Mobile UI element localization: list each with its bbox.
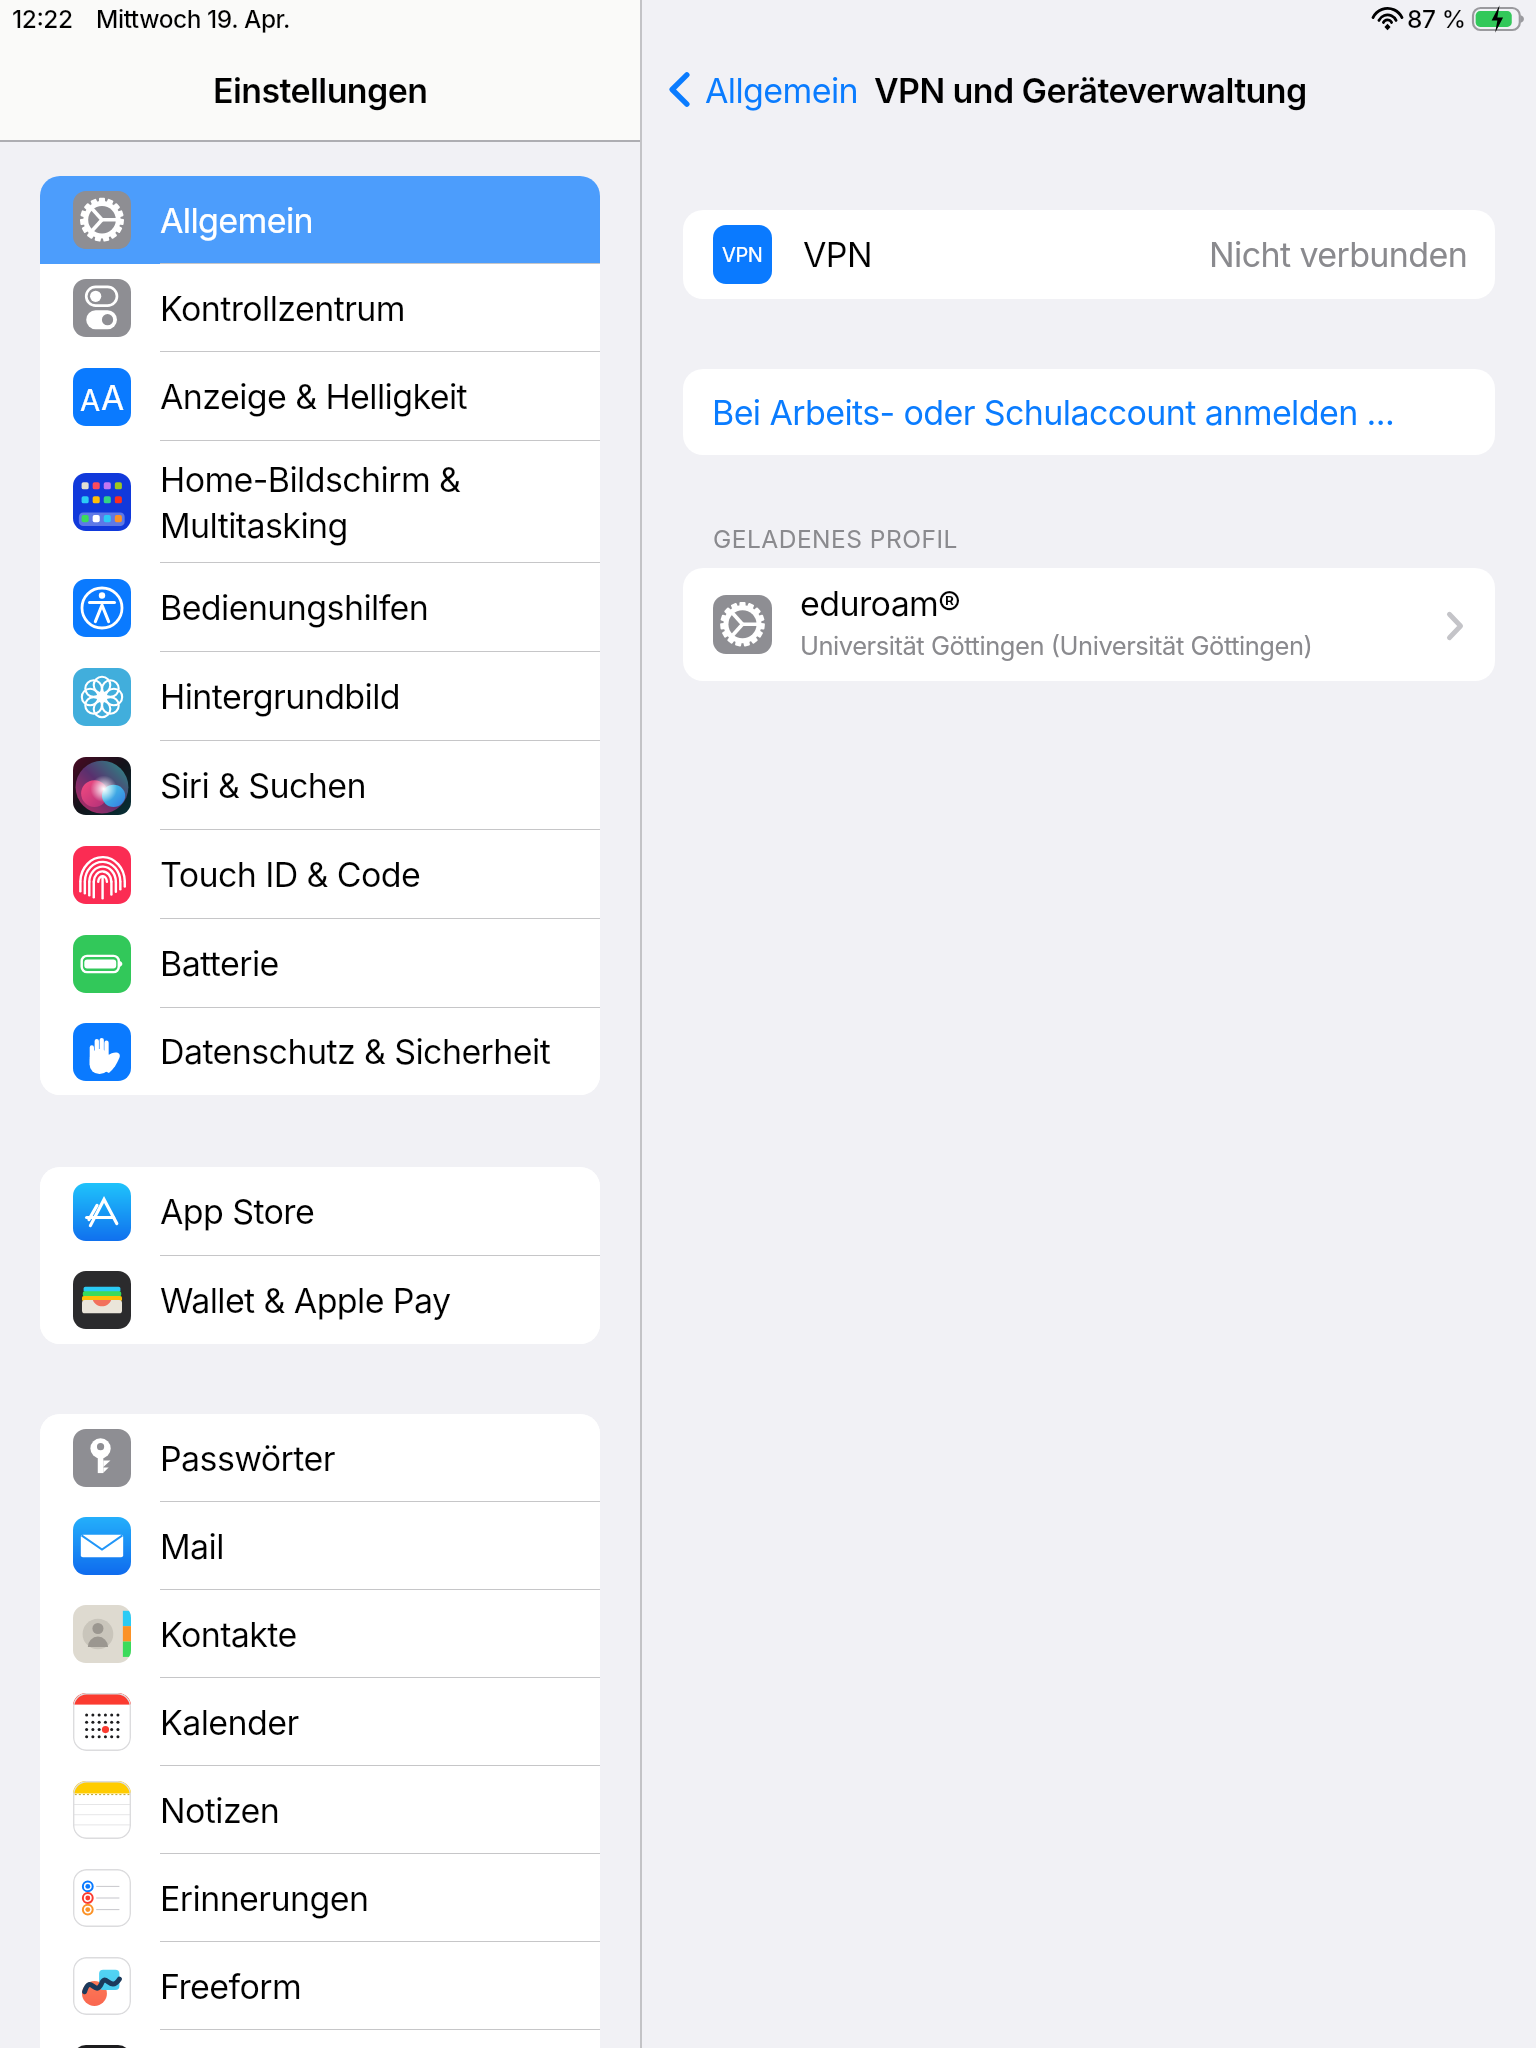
button[interactable]: Batterie — [40, 919, 600, 1008]
staticText: Batterie — [160, 943, 279, 984]
staticText: Notizen — [160, 1790, 280, 1831]
button[interactable]: Kontrollzentrum — [40, 264, 600, 352]
staticText: Nicht verbunden — [1209, 234, 1468, 275]
staticText: Touch ID & Code — [160, 854, 421, 895]
staticText: Passwörter — [160, 1438, 335, 1479]
button[interactable]: Home-Bildschirm & — [40, 441, 600, 563]
staticText: Home-Bildschirm & — [160, 459, 461, 500]
button[interactable]: Bedienungshilfen — [40, 563, 600, 652]
staticText: Siri & Suchen — [160, 765, 367, 806]
button[interactable]: Allgemein — [40, 176, 600, 264]
staticText: Mittwoch 19. Apr. — [96, 4, 291, 34]
button[interactable]: Sprachmemos — [40, 2030, 600, 2048]
staticText: Freeform — [160, 1966, 302, 2007]
staticText: Einstellungen — [213, 70, 428, 111]
button[interactable]: eduroam® — [683, 568, 1495, 681]
button[interactable]: App Store — [40, 1167, 600, 1256]
button[interactable]: Notizen — [40, 1766, 600, 1854]
staticText: Hintergrundbild — [160, 676, 401, 717]
staticText: Mail — [160, 1526, 224, 1567]
staticText: Wallet & Apple Pay — [160, 1280, 451, 1321]
staticText: Kontakte — [160, 1614, 297, 1655]
button[interactable]: Bei Arbeits- oder Schulaccount anmelden … — [683, 369, 1495, 455]
staticText: Universität Göttingen (Universität Götti… — [800, 630, 1313, 661]
button[interactable]: Wallet & Apple Pay — [40, 1256, 600, 1344]
button[interactable]: Siri & Suchen — [40, 741, 600, 830]
button[interactable]: Freeform — [40, 1942, 600, 2030]
staticText: Bedienungshilfen — [160, 587, 429, 628]
button[interactable]: Touch ID & Code — [40, 830, 600, 919]
staticText: VPN — [722, 243, 763, 267]
staticText: GELADENES PROFIL — [713, 524, 958, 554]
button[interactable]: Hintergrundbild — [40, 652, 600, 741]
staticText: Datenschutz & Sicherheit — [160, 1031, 551, 1072]
staticText: Allgemein — [705, 70, 859, 111]
staticText: Kontrollzentrum — [160, 288, 406, 329]
staticText: A — [80, 383, 101, 418]
button[interactable]: VPN — [683, 210, 1495, 299]
button[interactable]: Datenschutz & Sicherheit — [40, 1008, 600, 1095]
staticText: eduroam® — [800, 583, 961, 624]
button[interactable]: Kontakte — [40, 1590, 600, 1678]
staticText: A — [101, 377, 125, 418]
button[interactable]: Kalender — [40, 1678, 600, 1766]
button[interactable]: Zurück zu Allgemein — [649, 59, 709, 119]
button[interactable]: Allgemein — [705, 70, 859, 111]
staticText: Bei Arbeits- oder Schulaccount anmelden … — [712, 392, 1395, 433]
button[interactable]: Erinnerungen — [40, 1854, 600, 1942]
staticText: Kalender — [160, 1702, 299, 1743]
staticText: 87 % — [1407, 4, 1466, 34]
staticText: Allgemein — [160, 200, 314, 241]
staticText: VPN — [803, 234, 872, 275]
staticText: VPN und Geräteverwaltung — [874, 70, 1307, 111]
staticText: App Store — [160, 1191, 315, 1232]
staticText: Multitasking — [160, 505, 348, 546]
staticText: Erinnerungen — [160, 1878, 369, 1919]
button[interactable]: Passwörter — [40, 1414, 600, 1502]
button[interactable]: Mail — [40, 1502, 600, 1590]
button[interactable]: A — [40, 352, 600, 441]
staticText: 12:22 — [12, 4, 73, 34]
staticText: Anzeige & Helligkeit — [160, 376, 468, 417]
